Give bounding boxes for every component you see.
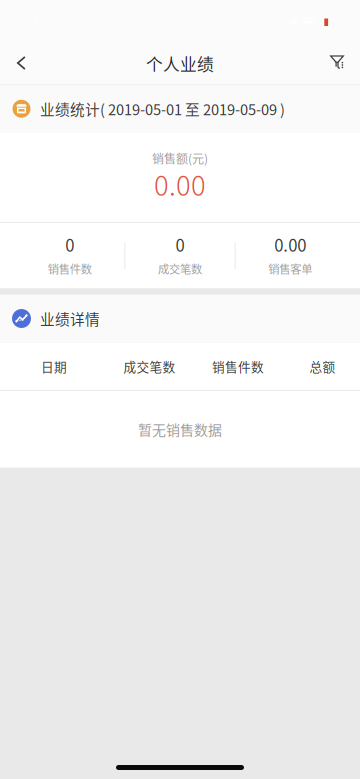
staticText: 0.00 xyxy=(274,232,306,256)
staticText: 0.00 xyxy=(154,164,206,204)
staticText: 日期 xyxy=(41,357,67,375)
button[interactable]: Filter xyxy=(315,37,360,85)
staticText: 销售额(元) xyxy=(152,150,208,167)
button[interactable]: Back xyxy=(0,36,43,86)
staticText: 销售件数 xyxy=(212,357,264,375)
staticText: 个人业绩 xyxy=(146,51,214,75)
staticText: 总额 xyxy=(309,357,335,375)
staticText: 业绩统计( 2019-05-01 至 2019-05-09 ) xyxy=(40,98,285,119)
staticText: 0 xyxy=(65,232,74,256)
staticText: 业绩详情 xyxy=(40,308,100,329)
staticText: 成交笔数 xyxy=(158,260,202,277)
staticText: 销售客单 xyxy=(268,260,312,277)
staticText: 0 xyxy=(175,232,184,256)
staticText: 成交笔数 xyxy=(123,357,175,375)
staticText: 销售件数 xyxy=(48,260,92,277)
staticText: 暂无销售数据 xyxy=(138,419,222,439)
